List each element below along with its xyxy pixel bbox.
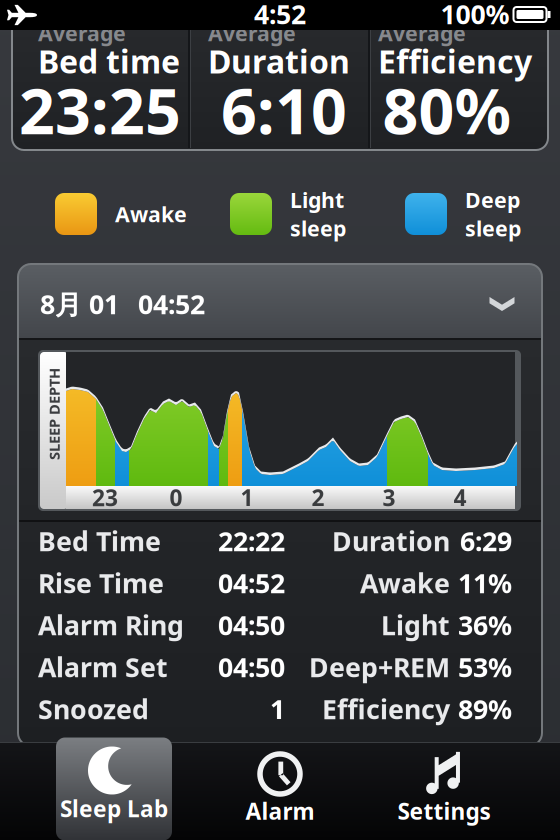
- staticText: Efficiency: [378, 40, 532, 82]
- staticText: 04:52: [138, 286, 205, 322]
- staticText: 6:29: [460, 523, 512, 559]
- staticText: Alarm Ring: [38, 607, 184, 643]
- staticText: 23:25: [19, 68, 181, 152]
- staticText: SLEEP DEPTH: [8, 404, 100, 424]
- staticText: 0: [169, 482, 182, 512]
- staticText: 23: [92, 482, 118, 512]
- staticText: 53%: [458, 649, 512, 685]
- staticText: 4: [453, 482, 466, 512]
- staticText: 80%: [382, 68, 511, 152]
- staticText: Deep: [465, 186, 520, 214]
- staticText: Deep+REM: [309, 649, 450, 685]
- staticText: 3: [382, 482, 395, 512]
- staticText: Settings: [397, 796, 490, 826]
- staticText: Awake: [360, 565, 450, 601]
- button[interactable]: Settings: [386, 742, 502, 840]
- staticText: 8月 01: [40, 286, 119, 322]
- staticText: 04:50: [218, 607, 285, 643]
- staticText: Bed time: [38, 40, 180, 82]
- staticText: Alarm Set: [38, 649, 168, 685]
- staticText: Average: [208, 19, 296, 47]
- staticText: Average: [38, 19, 126, 47]
- staticText: Efficiency: [322, 691, 450, 727]
- staticText: 22:22: [218, 523, 285, 559]
- staticText: Awake: [115, 200, 187, 228]
- staticText: sleep: [290, 214, 346, 242]
- staticText: 6:10: [221, 68, 347, 152]
- staticText: Snoozed: [38, 691, 149, 727]
- staticText: 1: [270, 691, 285, 727]
- staticText: 04:50: [218, 649, 285, 685]
- staticText: Alarm: [245, 796, 314, 826]
- staticText: 2: [311, 482, 324, 512]
- staticText: 89%: [458, 691, 512, 727]
- staticText: Bed Time: [38, 523, 161, 559]
- staticText: Light: [290, 186, 344, 214]
- staticText: Duration: [332, 523, 450, 559]
- button[interactable]: Sleep Lab: [56, 742, 172, 840]
- staticText: sleep: [465, 214, 521, 242]
- staticText: 36%: [458, 607, 512, 643]
- staticText: Duration: [208, 40, 350, 82]
- staticText: 04:52: [218, 565, 285, 601]
- staticText: Average: [378, 19, 466, 47]
- button[interactable]: 8月 01: [18, 264, 542, 338]
- button[interactable]: Alarm: [222, 742, 338, 840]
- staticText: Light: [381, 607, 450, 643]
- staticText: 100%: [440, 0, 509, 32]
- staticText: Rise Time: [38, 565, 164, 601]
- staticText: 11%: [458, 565, 512, 601]
- staticText: 4:52: [254, 0, 306, 32]
- staticText: 1: [240, 482, 253, 512]
- staticText: Sleep Lab: [60, 793, 168, 823]
